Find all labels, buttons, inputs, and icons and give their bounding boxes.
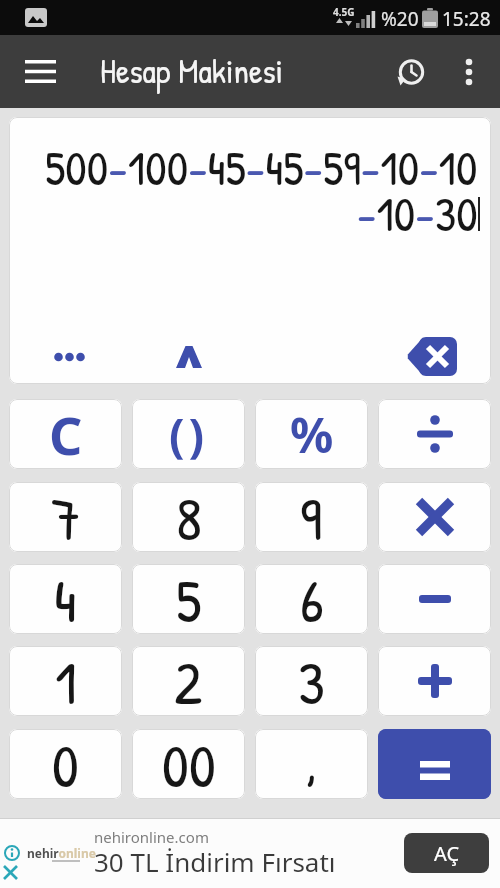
button[interactable]: () [132, 399, 245, 469]
staticText: 0 [52, 729, 79, 794]
staticText: 30 TL İndirim Fırsatı [94, 844, 336, 879]
button[interactable] [378, 646, 491, 716]
staticText: 500-100-45-45-59-10-10 [45, 135, 478, 185]
staticText: -10-30 [357, 181, 478, 231]
button[interactable] [378, 482, 491, 552]
button[interactable]: 00 [132, 729, 245, 799]
button[interactable]: 9 [255, 482, 368, 552]
button[interactable]: 5 [132, 564, 245, 634]
staticText: 8 [176, 482, 202, 547]
button[interactable] [389, 50, 433, 94]
staticText: 15:28 [442, 6, 491, 32]
staticText: 3 [298, 646, 325, 711]
button[interactable]: , [255, 729, 368, 799]
staticText: 00 [162, 729, 216, 794]
button[interactable]: 1 [9, 646, 122, 716]
staticText: %20 [381, 6, 419, 32]
staticText: 4 [54, 564, 77, 629]
staticText: 5 [176, 564, 202, 629]
button[interactable] [447, 50, 491, 94]
button[interactable] [399, 329, 465, 377]
staticText: nehironline [27, 845, 96, 861]
staticText: 6 [300, 564, 324, 629]
staticText: 9 [300, 482, 323, 547]
staticText: 1 [55, 646, 77, 711]
staticText: , [305, 729, 318, 789]
button[interactable] [166, 335, 212, 379]
button[interactable]: C [9, 399, 122, 469]
staticText: 7 [51, 482, 81, 547]
button[interactable]: 4 [9, 564, 122, 634]
button[interactable]: 6 [255, 564, 368, 634]
button[interactable] [378, 564, 491, 634]
button[interactable]: 3 [255, 646, 368, 716]
button[interactable]: 2 [132, 646, 245, 716]
staticText: nehironline.com [94, 827, 209, 847]
staticText: () [169, 403, 209, 466]
staticText: C [49, 399, 83, 469]
staticText: AÇ [434, 840, 460, 867]
button[interactable]: 7 [9, 482, 122, 552]
button[interactable]: 8 [132, 482, 245, 552]
button[interactable] [378, 399, 491, 469]
staticText: 2 [174, 646, 203, 711]
button[interactable]: 0 [9, 729, 122, 799]
staticText: Hesap Makinesi [100, 48, 284, 94]
button[interactable]: AÇ [404, 833, 489, 873]
button[interactable] [39, 341, 99, 373]
button[interactable] [16, 49, 64, 93]
staticText: 4.5G [333, 5, 355, 19]
button[interactable]: nehironline [0, 818, 500, 888]
button[interactable] [378, 729, 491, 799]
button[interactable]: % [255, 399, 368, 469]
staticText: % [290, 402, 334, 467]
